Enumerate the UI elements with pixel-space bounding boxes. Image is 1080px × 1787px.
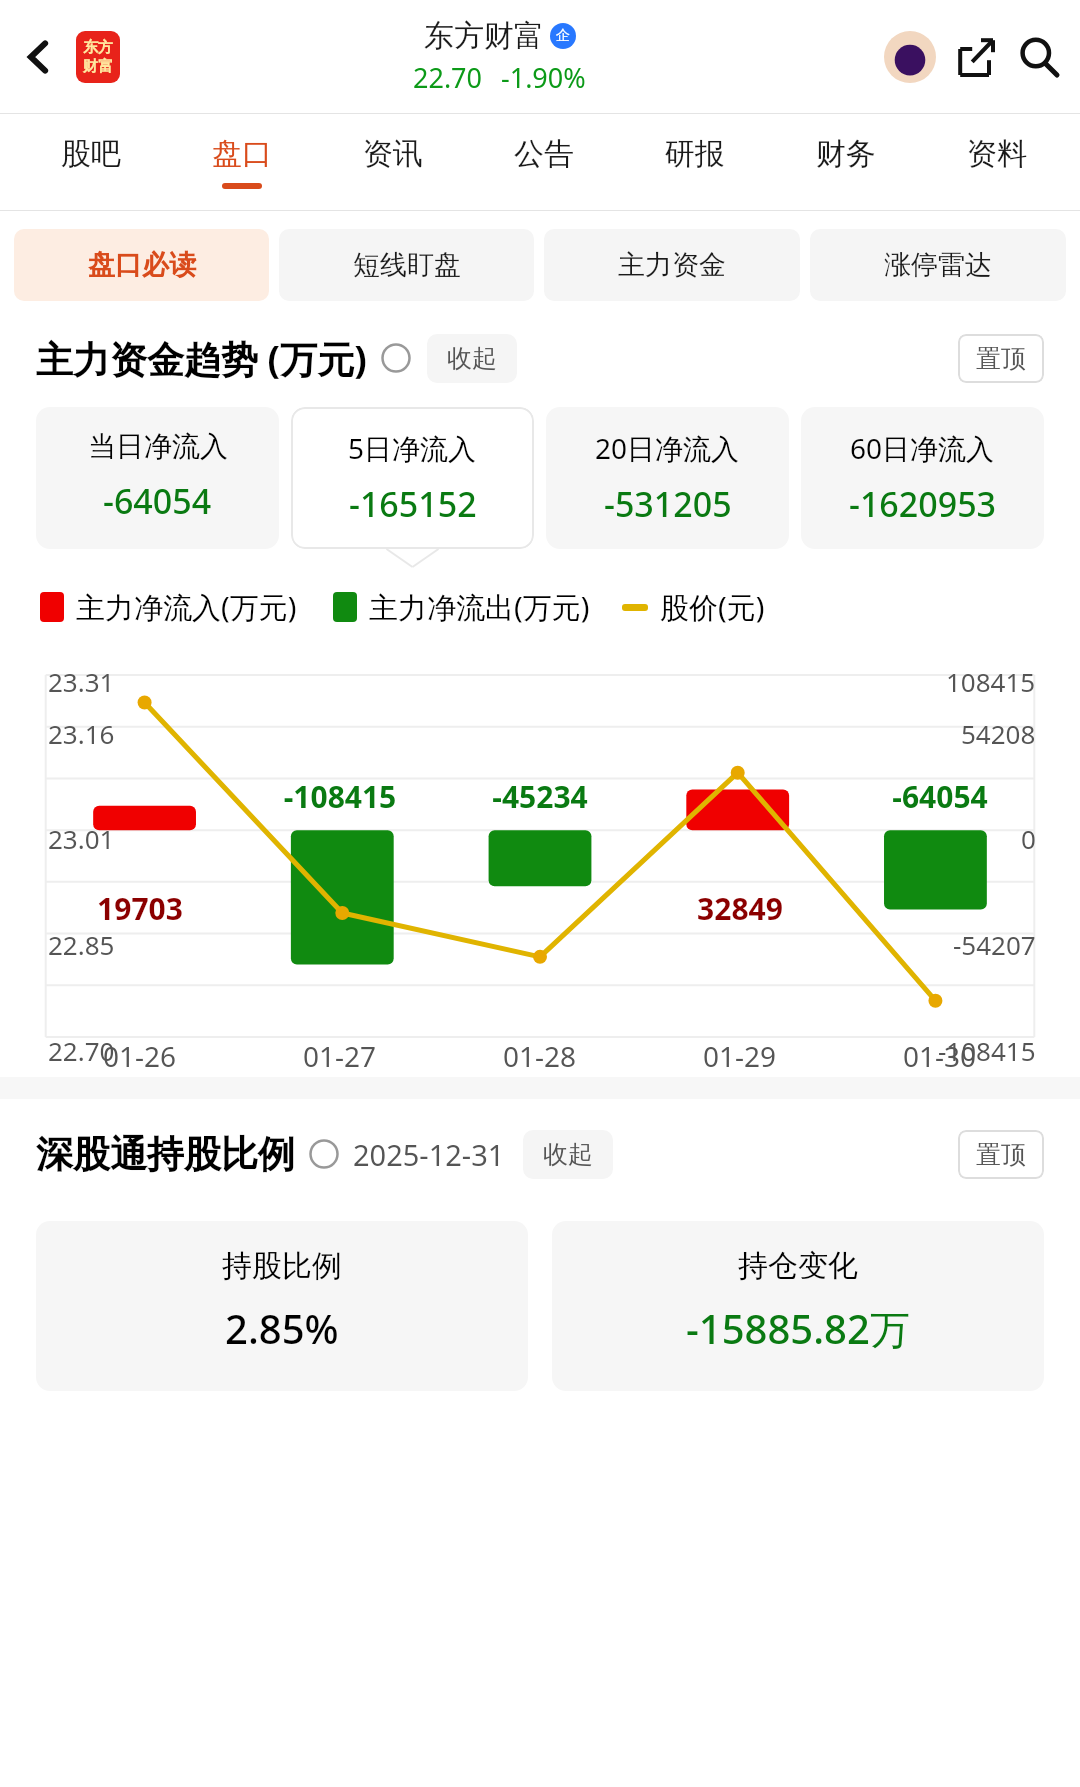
button[interactable]: Avatar [880,27,940,87]
staticText: 收起 [543,1139,593,1170]
staticText: 当日净流入 [88,429,228,464]
staticText: 持仓变化 [738,1247,858,1285]
staticText: -165152 [349,481,477,527]
staticText: 涨停雷达 [884,248,992,282]
button[interactable]: 公告 [468,114,619,210]
button[interactable]: 置顶 [958,1130,1044,1179]
staticText: 5日净流入 [348,429,477,467]
staticText: 主力资金 [618,248,726,282]
staticText: 2025-12-31 [353,1135,505,1174]
staticText: 资料 [967,135,1027,173]
staticText: 23.31 [48,664,115,699]
staticText: 持股比例 [222,1247,342,1285]
button[interactable]: 置顶 [958,334,1044,383]
button[interactable]: 收起 [523,1130,613,1179]
button[interactable]: 财务 [770,114,921,210]
staticText: -108415 [938,1033,1036,1068]
button[interactable]: Back [10,28,68,86]
button[interactable]: 收起 [427,334,517,383]
staticText: 收起 [447,343,497,374]
staticText: 32849 [640,888,840,929]
staticText: 22.85 [48,927,115,962]
staticText: -1.90% [501,59,586,96]
staticText: -108415 [240,776,440,817]
staticText: 深股通持股比例 [36,1131,295,1178]
button[interactable]: 20日净流入 [546,407,789,549]
staticText: 主力净流出(万元) [369,587,590,627]
button[interactable]: 持仓变化 [552,1221,1044,1391]
button[interactable]: Search [1008,26,1070,88]
button[interactable]: 当日净流入 [36,407,279,549]
staticText: 股价(元) [660,587,765,627]
button[interactable]: 60日净流入 [801,407,1044,549]
staticText: -54207 [953,927,1036,962]
button[interactable]: 主力资金 [544,229,800,301]
staticText: 主力资金趋势 (万元) [36,333,367,384]
staticText: 20日净流入 [595,429,740,467]
staticText: 盘口 [212,135,272,173]
staticText: 研报 [665,135,725,173]
staticText: 置顶 [976,1139,1026,1170]
button[interactable]: 盘口必读 [14,229,269,301]
staticText: 短线盯盘 [353,248,461,282]
staticText: 23.01 [48,821,115,856]
button[interactable]: 持股比例 [36,1221,528,1391]
staticText: 盘口必读 [88,248,196,282]
staticText: 54208 [961,716,1036,751]
staticText: 01-28 [503,1037,577,1075]
staticText: -15885.82万 [686,1301,910,1356]
button[interactable]: 研报 [619,114,770,210]
staticText: 主力净流入(万元) [76,587,297,627]
button[interactable]: 资讯 [317,114,468,210]
staticText: 60日净流入 [850,429,995,467]
staticText: 东方 [83,38,113,57]
staticText: 108415 [946,664,1036,699]
staticText: 19703 [40,888,240,929]
staticText: -45234 [440,776,640,817]
staticText: -531205 [604,481,732,527]
staticText: 资讯 [363,135,423,173]
staticText: 22.70 [48,1033,115,1068]
staticText: 财富 [83,57,113,76]
staticText: -64054 [103,478,212,524]
button[interactable]: 涨停雷达 [810,229,1066,301]
button[interactable]: 资料 [921,114,1072,210]
staticText: 置顶 [976,343,1026,374]
staticText: 公告 [514,135,574,173]
staticText: -64054 [840,776,1040,817]
staticText: 企 [556,27,570,45]
button[interactable]: 5日净流入 [291,407,534,549]
staticText: 0 [1021,821,1036,856]
button[interactable]: 盘口 [166,114,317,210]
staticText: 22.70 [413,59,483,96]
button[interactable]: East Money logo [76,31,120,83]
staticText: 东方财富 [424,17,544,55]
button[interactable]: 短线盯盘 [279,229,534,301]
staticText: -1620953 [849,481,997,527]
staticText: 2.85% [225,1301,339,1355]
button[interactable]: 股吧 [16,114,166,210]
staticText: 01-26 [103,1037,177,1075]
staticText: 01-27 [303,1037,377,1075]
staticText: 01-30 [903,1037,977,1075]
staticText: 财务 [816,135,876,173]
staticText: 01-29 [703,1037,777,1075]
staticText: 23.16 [48,716,115,751]
staticText: 股吧 [61,135,121,173]
button[interactable]: Share [946,26,1008,88]
